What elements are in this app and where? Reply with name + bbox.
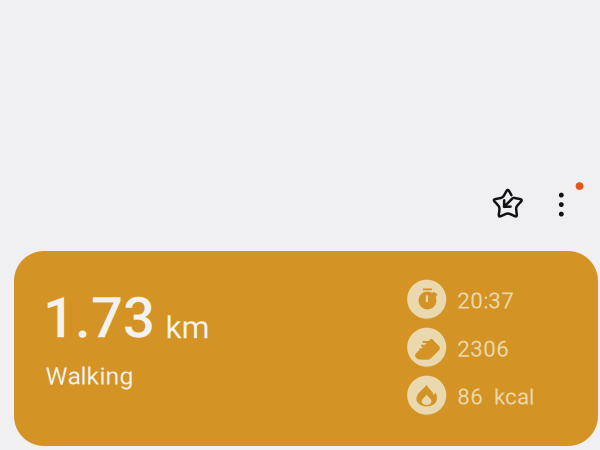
staticText: kcal <box>494 384 534 410</box>
button[interactable]: Save workout <box>486 182 530 226</box>
staticText: 2306 <box>457 336 509 362</box>
staticText: 1.73 <box>43 285 155 351</box>
staticText: km <box>165 308 209 346</box>
staticText: 20:37 <box>457 288 514 314</box>
button[interactable]: More options <box>542 181 586 225</box>
staticText: Walking <box>45 362 133 391</box>
staticText: 86 <box>457 384 483 410</box>
